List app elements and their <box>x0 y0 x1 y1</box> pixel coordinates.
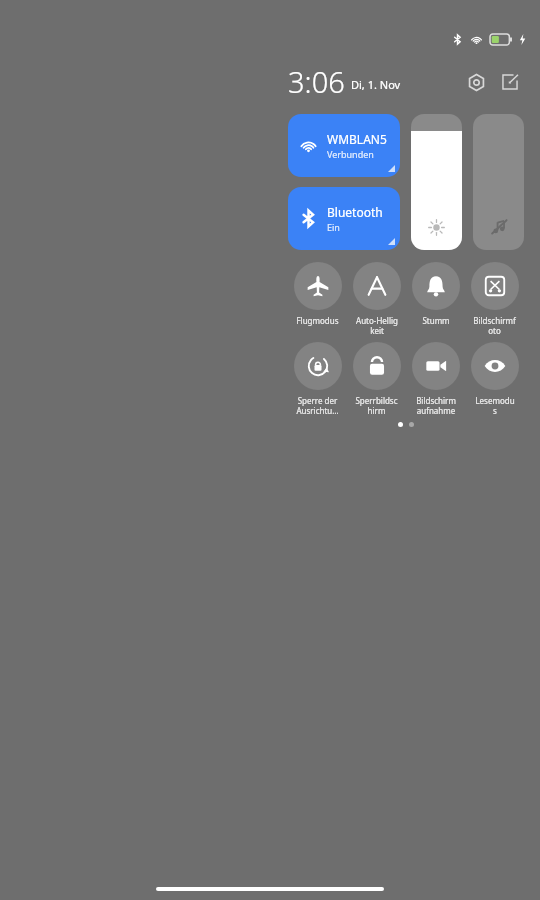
button[interactable]: Sperre der Ausrichtu… <box>288 342 347 416</box>
staticText: Sperrbildsc hirm <box>355 395 398 416</box>
button[interactable]: Bildschirmf oto <box>465 262 524 336</box>
button[interactable]: Edit <box>496 68 524 96</box>
staticText: Verbunden <box>327 148 374 160</box>
staticText: Auto-Hellig keit <box>356 315 398 336</box>
button[interactable]: Flugmodus <box>288 262 347 326</box>
button[interactable]: Brightness <box>411 114 462 250</box>
button[interactable]: Lesemodu s <box>465 342 524 416</box>
button[interactable]: Auto-Hellig keit <box>347 262 406 336</box>
button[interactable]: Settings <box>462 68 490 96</box>
staticText: Sperre der Ausrichtu… <box>296 395 339 416</box>
staticText: Stumm <box>422 315 450 326</box>
staticText: 3:06 <box>288 62 345 101</box>
staticText: Bildschirmf oto <box>473 315 516 336</box>
staticText: WMBLAN5 <box>327 131 387 147</box>
staticText: Di, 1. Nov <box>351 77 401 92</box>
staticText: Flugmodus <box>296 315 339 326</box>
staticText: Bildschirm aufnahme <box>416 395 456 416</box>
staticText: Bluetooth <box>327 204 383 220</box>
staticText: Ein <box>327 221 340 233</box>
button[interactable]: WMBLAN5 <box>288 114 400 177</box>
button[interactable]: Stumm <box>406 262 465 326</box>
button[interactable]: Bildschirm aufnahme <box>406 342 465 416</box>
button[interactable]: Sperrbildsc hirm <box>347 342 406 416</box>
staticText: Lesemodu s <box>475 395 515 416</box>
button[interactable]: Volume muted <box>473 114 524 250</box>
button[interactable]: Bluetooth <box>288 187 400 250</box>
